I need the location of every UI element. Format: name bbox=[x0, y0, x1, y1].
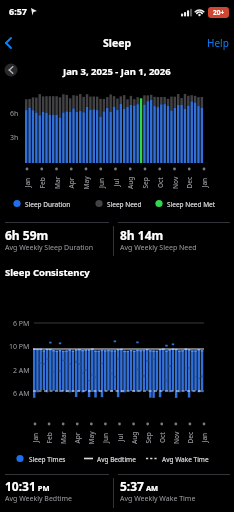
staticText: Jan bbox=[22, 177, 31, 187]
staticText: Avg Bedtime bbox=[97, 455, 136, 464]
staticText: Mar bbox=[53, 176, 62, 189]
staticText: Sep bbox=[143, 431, 152, 443]
staticText: 6h bbox=[10, 109, 19, 119]
staticText: 10:31 PM bbox=[5, 478, 50, 494]
staticText: Jun bbox=[97, 177, 106, 188]
staticText: 6 PM bbox=[13, 319, 30, 329]
staticText: Avg Weekly Wake Time bbox=[120, 494, 196, 504]
staticText: Aug bbox=[126, 176, 135, 189]
staticText: 5:37 AM bbox=[120, 478, 159, 494]
staticText: Apr bbox=[72, 431, 81, 443]
staticText: Sleep Consistency bbox=[5, 266, 90, 279]
staticText: Jan 3, 2025 - Jan 1, 2026 bbox=[63, 65, 171, 78]
staticText: 2 AM bbox=[13, 366, 30, 376]
staticText: Mar bbox=[59, 431, 68, 444]
staticText: Jan bbox=[199, 432, 208, 442]
staticText: Jan bbox=[199, 177, 208, 187]
staticText: Feb bbox=[37, 176, 46, 188]
staticText: 20+ bbox=[213, 8, 225, 17]
staticText: Sleep Need Met bbox=[167, 200, 216, 209]
staticText: Sep bbox=[140, 176, 149, 188]
staticText: 8h 14m bbox=[120, 227, 164, 243]
staticText: Avg Weekly Bedtime bbox=[5, 494, 72, 504]
staticText: 3h bbox=[10, 133, 19, 143]
staticText: 6 AM bbox=[13, 389, 30, 399]
button[interactable] bbox=[4, 63, 18, 77]
button[interactable] bbox=[0, 474, 110, 510]
staticText: Feb bbox=[44, 431, 53, 443]
button[interactable] bbox=[0, 222, 110, 258]
staticText: Sleep bbox=[103, 36, 132, 50]
staticText: Dec bbox=[184, 176, 193, 188]
staticText: 10 PM bbox=[9, 342, 30, 352]
staticText: Avg Weekly Sleep Duration bbox=[5, 243, 94, 253]
staticText: Nov bbox=[171, 176, 180, 189]
staticText: Sleep Times bbox=[29, 455, 66, 464]
staticText: Aug bbox=[130, 431, 139, 444]
staticText: Jul bbox=[111, 178, 120, 186]
staticText: Dec bbox=[185, 431, 194, 443]
staticText: May bbox=[81, 175, 90, 189]
staticText: 6h 59m bbox=[5, 227, 49, 243]
staticText: Oct bbox=[158, 432, 167, 443]
staticText: Help bbox=[207, 36, 229, 50]
staticText: May bbox=[86, 430, 95, 444]
staticText: Sleep Duration bbox=[25, 200, 71, 209]
staticText: Nov bbox=[172, 431, 181, 444]
staticText: Sleep Need bbox=[107, 200, 142, 209]
button[interactable]: Help bbox=[198, 34, 232, 52]
staticText: Avg Weekly Sleep Need bbox=[120, 243, 197, 253]
staticText: Apr bbox=[66, 176, 75, 188]
staticText: Jul bbox=[115, 433, 124, 441]
staticText: Jun bbox=[101, 432, 110, 443]
staticText: Jan bbox=[30, 432, 39, 442]
staticText: 6:57 bbox=[9, 5, 27, 17]
button[interactable] bbox=[2, 33, 20, 53]
staticText: Avg Wake Time bbox=[162, 455, 209, 464]
staticText: Oct bbox=[156, 177, 165, 188]
